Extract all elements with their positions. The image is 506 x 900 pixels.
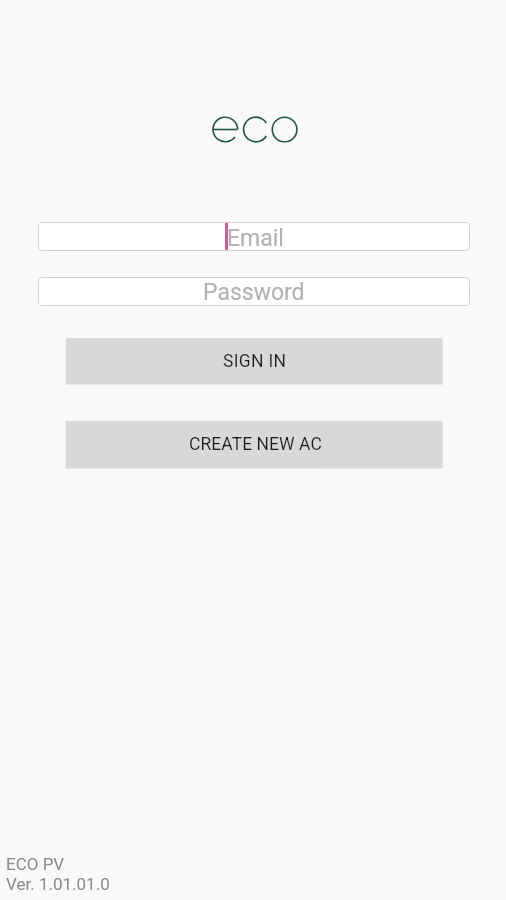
- staticText: Email: [227, 225, 284, 251]
- staticText: SIGN IN: [223, 351, 287, 372]
- staticText: Password: [203, 279, 305, 306]
- button[interactable]: CREATE NEW AC: [66, 421, 442, 468]
- staticText: ECO PV: [6, 854, 65, 874]
- other: eco logo: [213, 116, 297, 143]
- button[interactable]: SIGN IN: [66, 338, 442, 384]
- staticText: Ver. 1.01.01.0: [6, 874, 110, 894]
- button[interactable]: Email: [38, 222, 470, 251]
- button[interactable]: Password: [38, 277, 470, 306]
- staticText: CREATE NEW AC: [189, 434, 322, 455]
